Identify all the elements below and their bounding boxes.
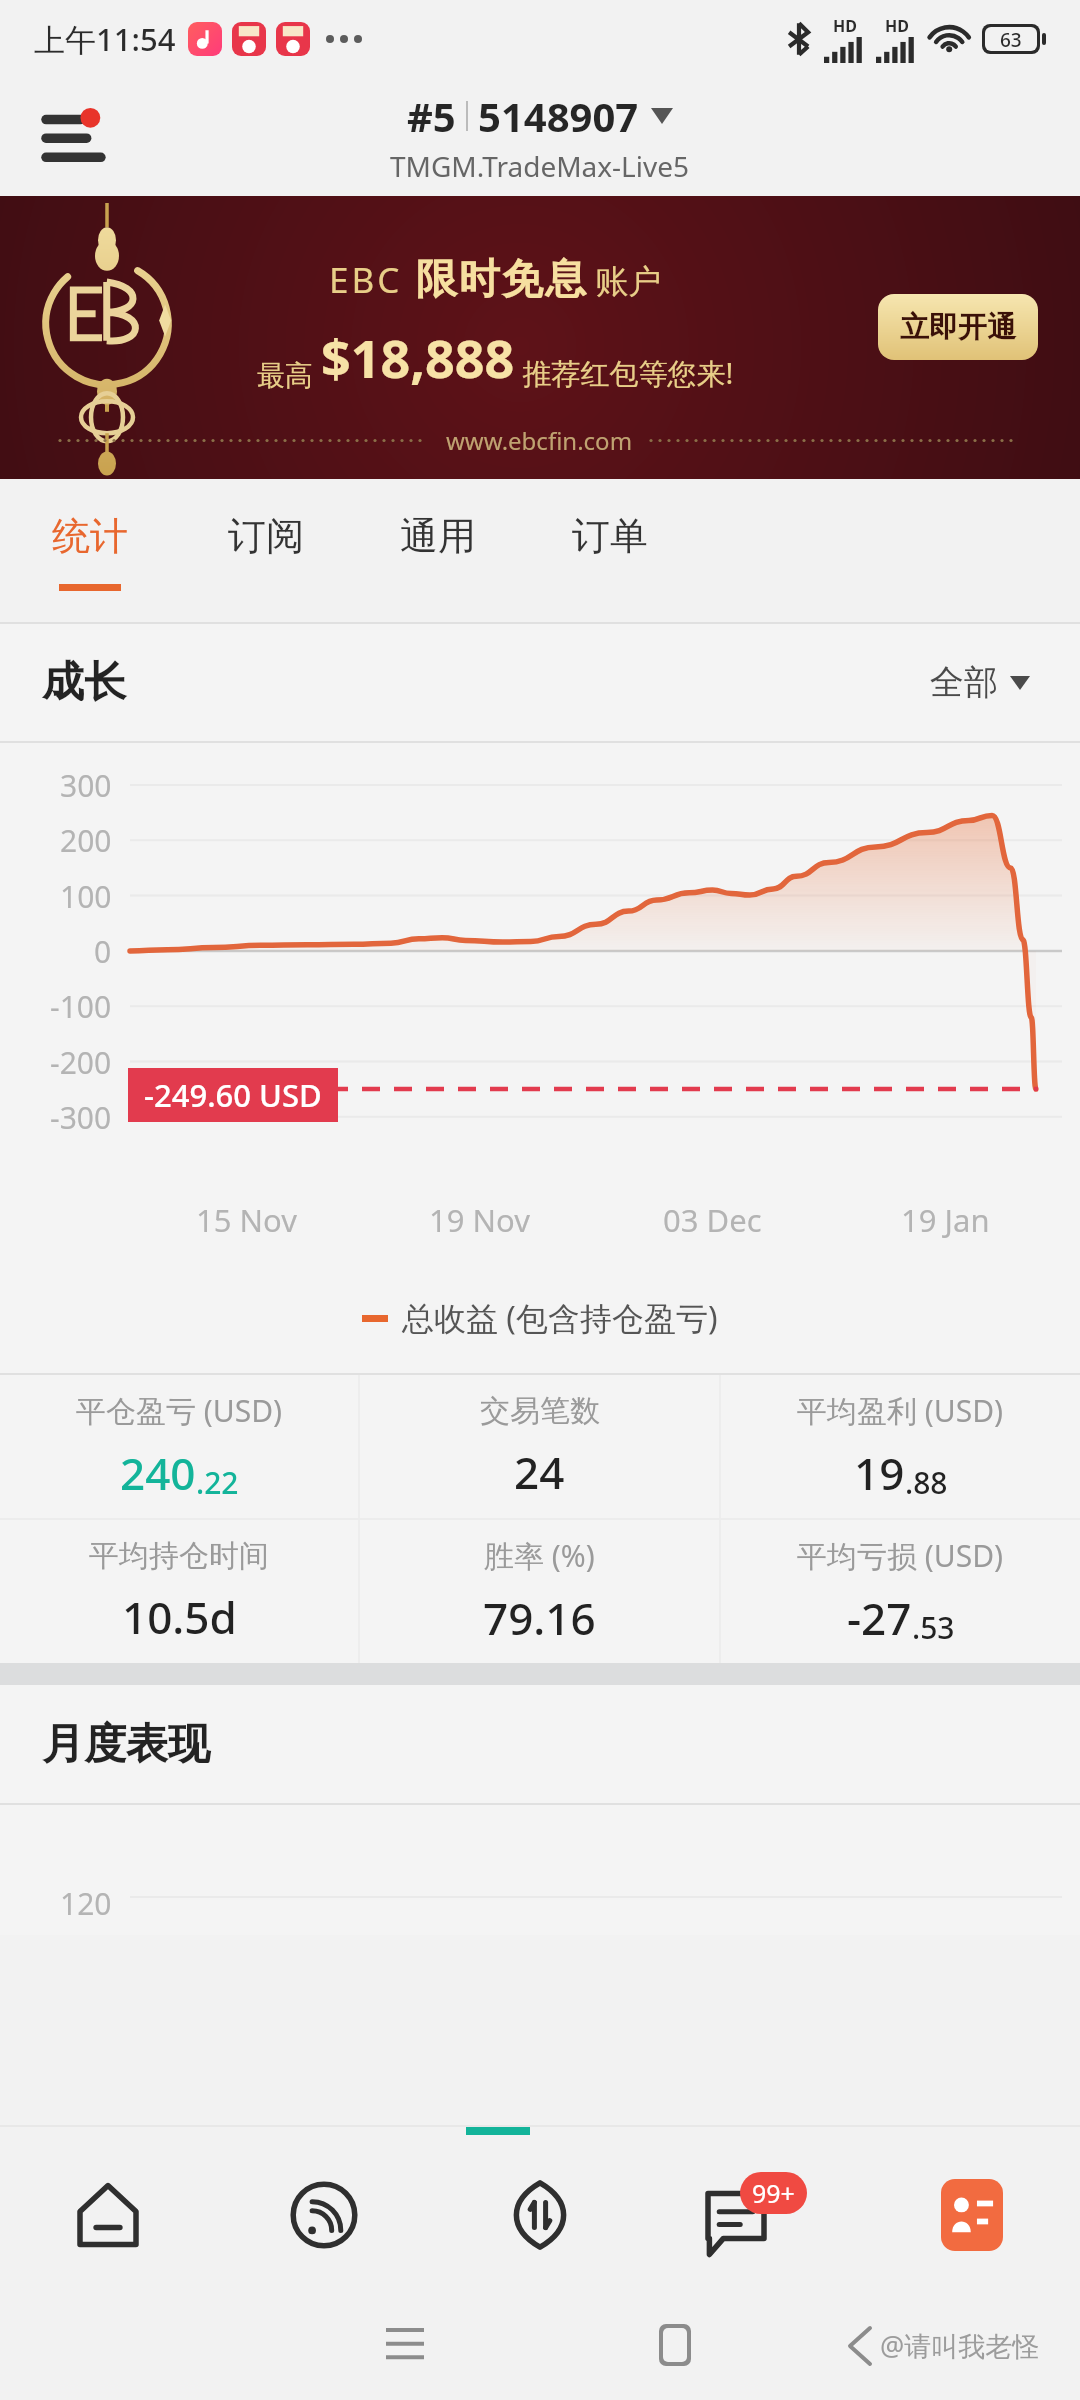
staticText: 总收益 (包含持仓盈亏) (402, 1296, 718, 1340)
staticText: 推荐红包等您来! (515, 353, 734, 393)
staticText: -27 (847, 1588, 912, 1648)
staticText: HD (885, 15, 909, 37)
button[interactable]: 全部 (922, 653, 1038, 712)
staticText: 最高 (257, 355, 321, 393)
staticText: 300 (60, 765, 112, 806)
staticText: 通用 (400, 512, 476, 560)
staticText: 5148907 (478, 89, 639, 143)
staticText: 79.16 (483, 1588, 596, 1648)
staticText: 限时免息 (415, 254, 587, 306)
staticText: 全部 (930, 661, 998, 704)
button[interactable]: Profile (864, 2139, 1080, 2290)
button[interactable]: Menu (28, 92, 118, 182)
staticText: 99+ (752, 2176, 795, 2210)
staticText: 交易笔数 (480, 1392, 600, 1430)
staticText: 订阅 (228, 512, 304, 560)
staticText: 统计 (52, 512, 128, 560)
staticText: 上午11:54 (34, 18, 176, 60)
staticText: 19 Jan (901, 1199, 990, 1241)
staticText: .53 (912, 1607, 955, 1648)
staticText: 03 Dec (663, 1199, 762, 1241)
staticText: 19 (854, 1443, 905, 1503)
staticText: $18,888 (321, 322, 515, 393)
button[interactable]: 订阅 (180, 479, 352, 624)
staticText: 24 (514, 1442, 565, 1502)
staticText: 订单 (572, 512, 648, 560)
staticText: .88 (905, 1462, 948, 1503)
staticText: 月度表现 (42, 1718, 210, 1771)
button[interactable]: EBC (0, 196, 1080, 479)
button[interactable]: Chat (648, 2139, 864, 2290)
button[interactable]: 统计 (0, 479, 180, 624)
staticText: 10.5d (122, 1587, 237, 1647)
button[interactable]: Trade (432, 2139, 648, 2290)
button[interactable]: 订单 (524, 479, 696, 624)
staticText: HD (833, 15, 857, 37)
staticText: 0 (94, 931, 112, 972)
staticText: 240 (120, 1443, 196, 1503)
staticText: 15 Nov (196, 1199, 297, 1241)
staticText: 120 (60, 1883, 112, 1924)
staticText: www.ebcfin.com (446, 424, 633, 457)
staticText: 19 Nov (429, 1199, 530, 1241)
staticText: 平均持仓时间 (89, 1537, 269, 1575)
staticText: 63 (1000, 27, 1022, 51)
staticText: EBC (329, 256, 415, 304)
button[interactable]: #5 (390, 89, 690, 185)
staticText: 立即开通 (900, 309, 1016, 346)
staticText: 平均亏损 (USD) (797, 1535, 1004, 1576)
staticText: TMGM.TradeMax-Live5 (390, 147, 690, 185)
staticText: #5 (407, 89, 456, 143)
staticText: -200 (50, 1042, 112, 1083)
staticText: .22 (196, 1462, 239, 1503)
staticText: -249.60 USD (144, 1074, 322, 1116)
staticText: 账户 (587, 258, 662, 303)
staticText: 100 (60, 876, 112, 917)
staticText: 胜率 (%) (484, 1535, 595, 1576)
staticText: 平仓盈亏 (USD) (76, 1390, 283, 1431)
button[interactable]: Home (0, 2139, 216, 2290)
staticText: -100 (50, 986, 112, 1027)
button[interactable]: 通用 (352, 479, 524, 624)
staticText: 平均盈利 (USD) (797, 1390, 1004, 1431)
staticText: -300 (50, 1097, 112, 1138)
staticText: @请叫我老怪 (880, 2327, 1040, 2364)
staticText: 200 (60, 820, 112, 861)
staticText: 成长 (42, 656, 126, 709)
button[interactable]: 立即开通 (878, 294, 1038, 360)
button[interactable]: Signals (216, 2139, 432, 2290)
